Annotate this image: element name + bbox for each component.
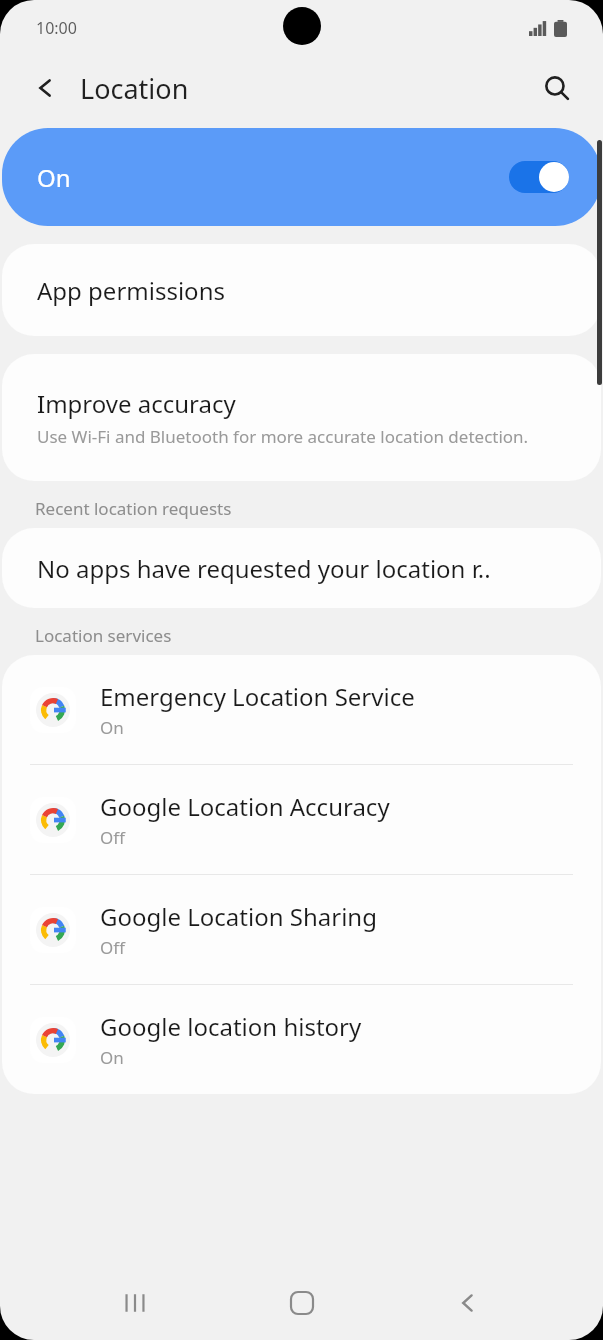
button[interactable]: No apps have requested your location r.. xyxy=(2,528,601,608)
staticText: Google Location Sharing xyxy=(100,900,377,933)
button[interactable]: Back xyxy=(437,1272,499,1334)
staticText: App permissions xyxy=(37,274,225,307)
button[interactable]: Search xyxy=(533,64,581,112)
staticText: On xyxy=(100,1046,124,1069)
staticText: Location services xyxy=(35,624,172,647)
staticText: Off xyxy=(100,936,125,959)
staticText: On xyxy=(100,716,124,739)
staticText: Google Location Accuracy xyxy=(100,790,390,823)
button[interactable]: Google location history xyxy=(2,985,601,1094)
staticText: Google location history xyxy=(100,1010,362,1043)
staticText: Emergency Location Service xyxy=(100,680,415,713)
button[interactable]: Home xyxy=(271,1272,333,1334)
button[interactable]: Google Location Sharing xyxy=(2,875,601,985)
staticText: No apps have requested your location r.. xyxy=(37,552,491,585)
staticText: Location xyxy=(80,70,189,107)
staticText: Recent location requests xyxy=(35,497,232,520)
staticText: On xyxy=(37,161,71,194)
button[interactable]: Back xyxy=(22,64,70,112)
button[interactable]: Google Location Accuracy xyxy=(2,765,601,875)
button[interactable]: Emergency Location Service xyxy=(2,655,601,765)
staticText: 10:00 xyxy=(36,17,77,39)
button[interactable]: Recents xyxy=(104,1272,166,1334)
staticText: Use Wi-Fi and Bluetooth for more accurat… xyxy=(37,425,529,448)
staticText: Off xyxy=(100,826,125,849)
button[interactable]: Improve accuracy xyxy=(2,354,601,481)
button[interactable]: On xyxy=(2,128,601,226)
staticText: Improve accuracy xyxy=(37,387,236,420)
button[interactable]: App permissions xyxy=(2,244,601,336)
